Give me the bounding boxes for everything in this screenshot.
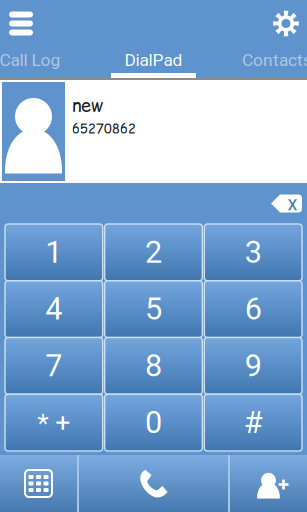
staticText: 8 bbox=[145, 348, 162, 384]
staticText: new bbox=[72, 93, 103, 118]
staticText: 7 bbox=[45, 348, 62, 384]
button[interactable]: 1 bbox=[5, 224, 103, 281]
staticText: 9 bbox=[245, 348, 262, 384]
button[interactable]: Add contact bbox=[230, 455, 307, 512]
staticText: 2 bbox=[145, 234, 162, 270]
button[interactable]: Call Log bbox=[0, 47, 89, 78]
button[interactable]: 5 bbox=[105, 281, 202, 338]
button[interactable]: 6 bbox=[204, 281, 302, 338]
staticText: 6 bbox=[245, 291, 262, 327]
button[interactable]: Dial pad bbox=[0, 455, 77, 512]
button[interactable]: 3 bbox=[204, 224, 302, 281]
button[interactable]: Contacts bbox=[218, 47, 307, 78]
button[interactable]: Call bbox=[79, 455, 228, 512]
staticText: 65270862 bbox=[72, 120, 136, 138]
staticText: # bbox=[244, 405, 263, 441]
staticText: Call Log bbox=[0, 50, 60, 70]
staticText: 0 bbox=[145, 405, 162, 441]
button[interactable]: Menu bbox=[0, 0, 42, 47]
button[interactable]: 7 bbox=[5, 337, 103, 394]
button[interactable]: # bbox=[204, 394, 302, 451]
staticText: DialPad bbox=[124, 50, 182, 70]
button[interactable]: 0 bbox=[105, 394, 202, 451]
staticText: 5 bbox=[145, 291, 162, 327]
button[interactable]: Backspace bbox=[261, 184, 307, 222]
button[interactable]: * + bbox=[5, 394, 103, 451]
button[interactable]: 2 bbox=[105, 224, 202, 281]
button[interactable]: Settings bbox=[265, 0, 307, 47]
staticText: 1 bbox=[45, 234, 62, 270]
staticText: Contacts bbox=[242, 50, 307, 70]
button[interactable]: 9 bbox=[204, 337, 302, 394]
staticText: 4 bbox=[45, 291, 62, 327]
button[interactable]: 8 bbox=[105, 337, 202, 394]
button[interactable]: DialPad bbox=[111, 47, 196, 78]
staticText: 3 bbox=[245, 234, 262, 270]
staticText: * + bbox=[37, 407, 70, 438]
button[interactable]: 4 bbox=[5, 281, 103, 338]
staticText: x bbox=[287, 192, 297, 215]
